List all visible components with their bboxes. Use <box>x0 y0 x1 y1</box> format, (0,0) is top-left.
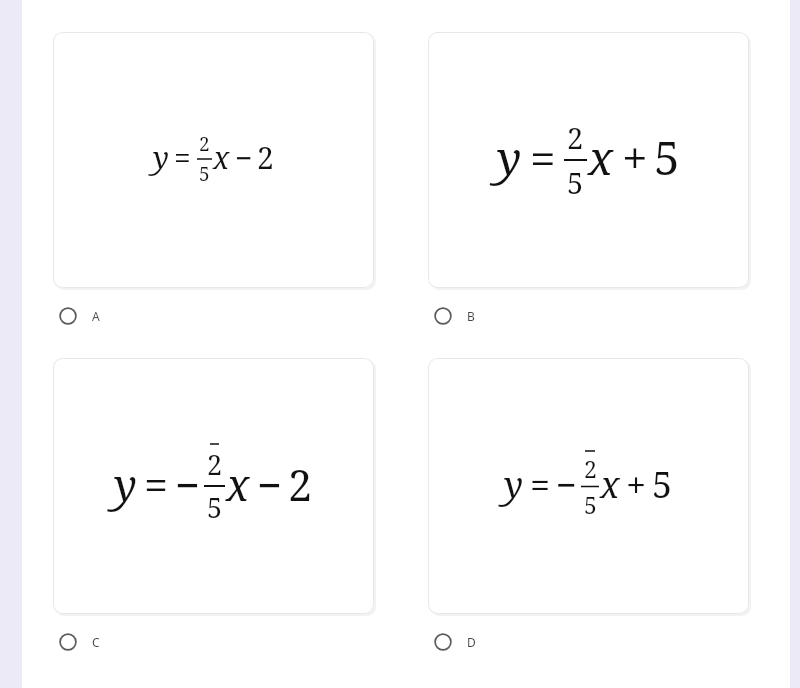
staticText: y <box>497 126 522 189</box>
button[interactable]: Select option C <box>57 630 102 654</box>
staticText: 5 <box>199 161 210 187</box>
staticText: 2 <box>199 131 210 157</box>
staticText: 5 <box>654 126 680 189</box>
staticText: B <box>467 308 475 324</box>
other: Select option A <box>59 307 77 325</box>
button[interactable]: Select option B <box>432 304 477 328</box>
staticText: x <box>600 460 620 509</box>
other: Select option C <box>59 633 77 651</box>
staticText: + <box>622 126 648 189</box>
button[interactable]: y <box>428 32 751 290</box>
staticText: y <box>504 460 524 509</box>
staticText: − <box>257 455 282 514</box>
other: Select option B <box>434 307 452 325</box>
staticText: x <box>213 137 230 178</box>
staticText: y <box>153 137 169 178</box>
button[interactable]: y <box>53 358 376 616</box>
staticText: 5 <box>207 489 223 526</box>
staticText: 2 <box>567 118 584 157</box>
button[interactable]: y <box>53 32 376 290</box>
button[interactable]: Select option A <box>57 304 102 328</box>
staticText: D <box>467 634 476 650</box>
staticText: y <box>114 455 137 514</box>
button[interactable]: y <box>428 358 751 616</box>
staticText: 2 <box>207 446 223 483</box>
staticText: A <box>92 308 100 324</box>
staticText: − <box>175 455 200 514</box>
staticText: 2 <box>584 453 597 484</box>
staticText: = <box>530 126 556 189</box>
staticText: 5 <box>652 460 673 509</box>
staticText: 5 <box>584 489 597 520</box>
staticText: x <box>588 126 614 189</box>
other: Select option D <box>434 633 452 651</box>
staticText: 2 <box>288 455 313 514</box>
staticText: = <box>144 455 169 514</box>
staticText: C <box>92 634 100 650</box>
staticText: 2 <box>257 137 274 178</box>
staticText: − <box>235 137 253 178</box>
staticText: 5 <box>567 163 584 202</box>
button[interactable]: Select option D <box>432 630 478 654</box>
staticText: + <box>626 460 647 509</box>
staticText: x <box>226 455 250 514</box>
staticText: = <box>530 460 551 509</box>
staticText: − <box>556 460 577 509</box>
staticText: = <box>174 137 191 178</box>
